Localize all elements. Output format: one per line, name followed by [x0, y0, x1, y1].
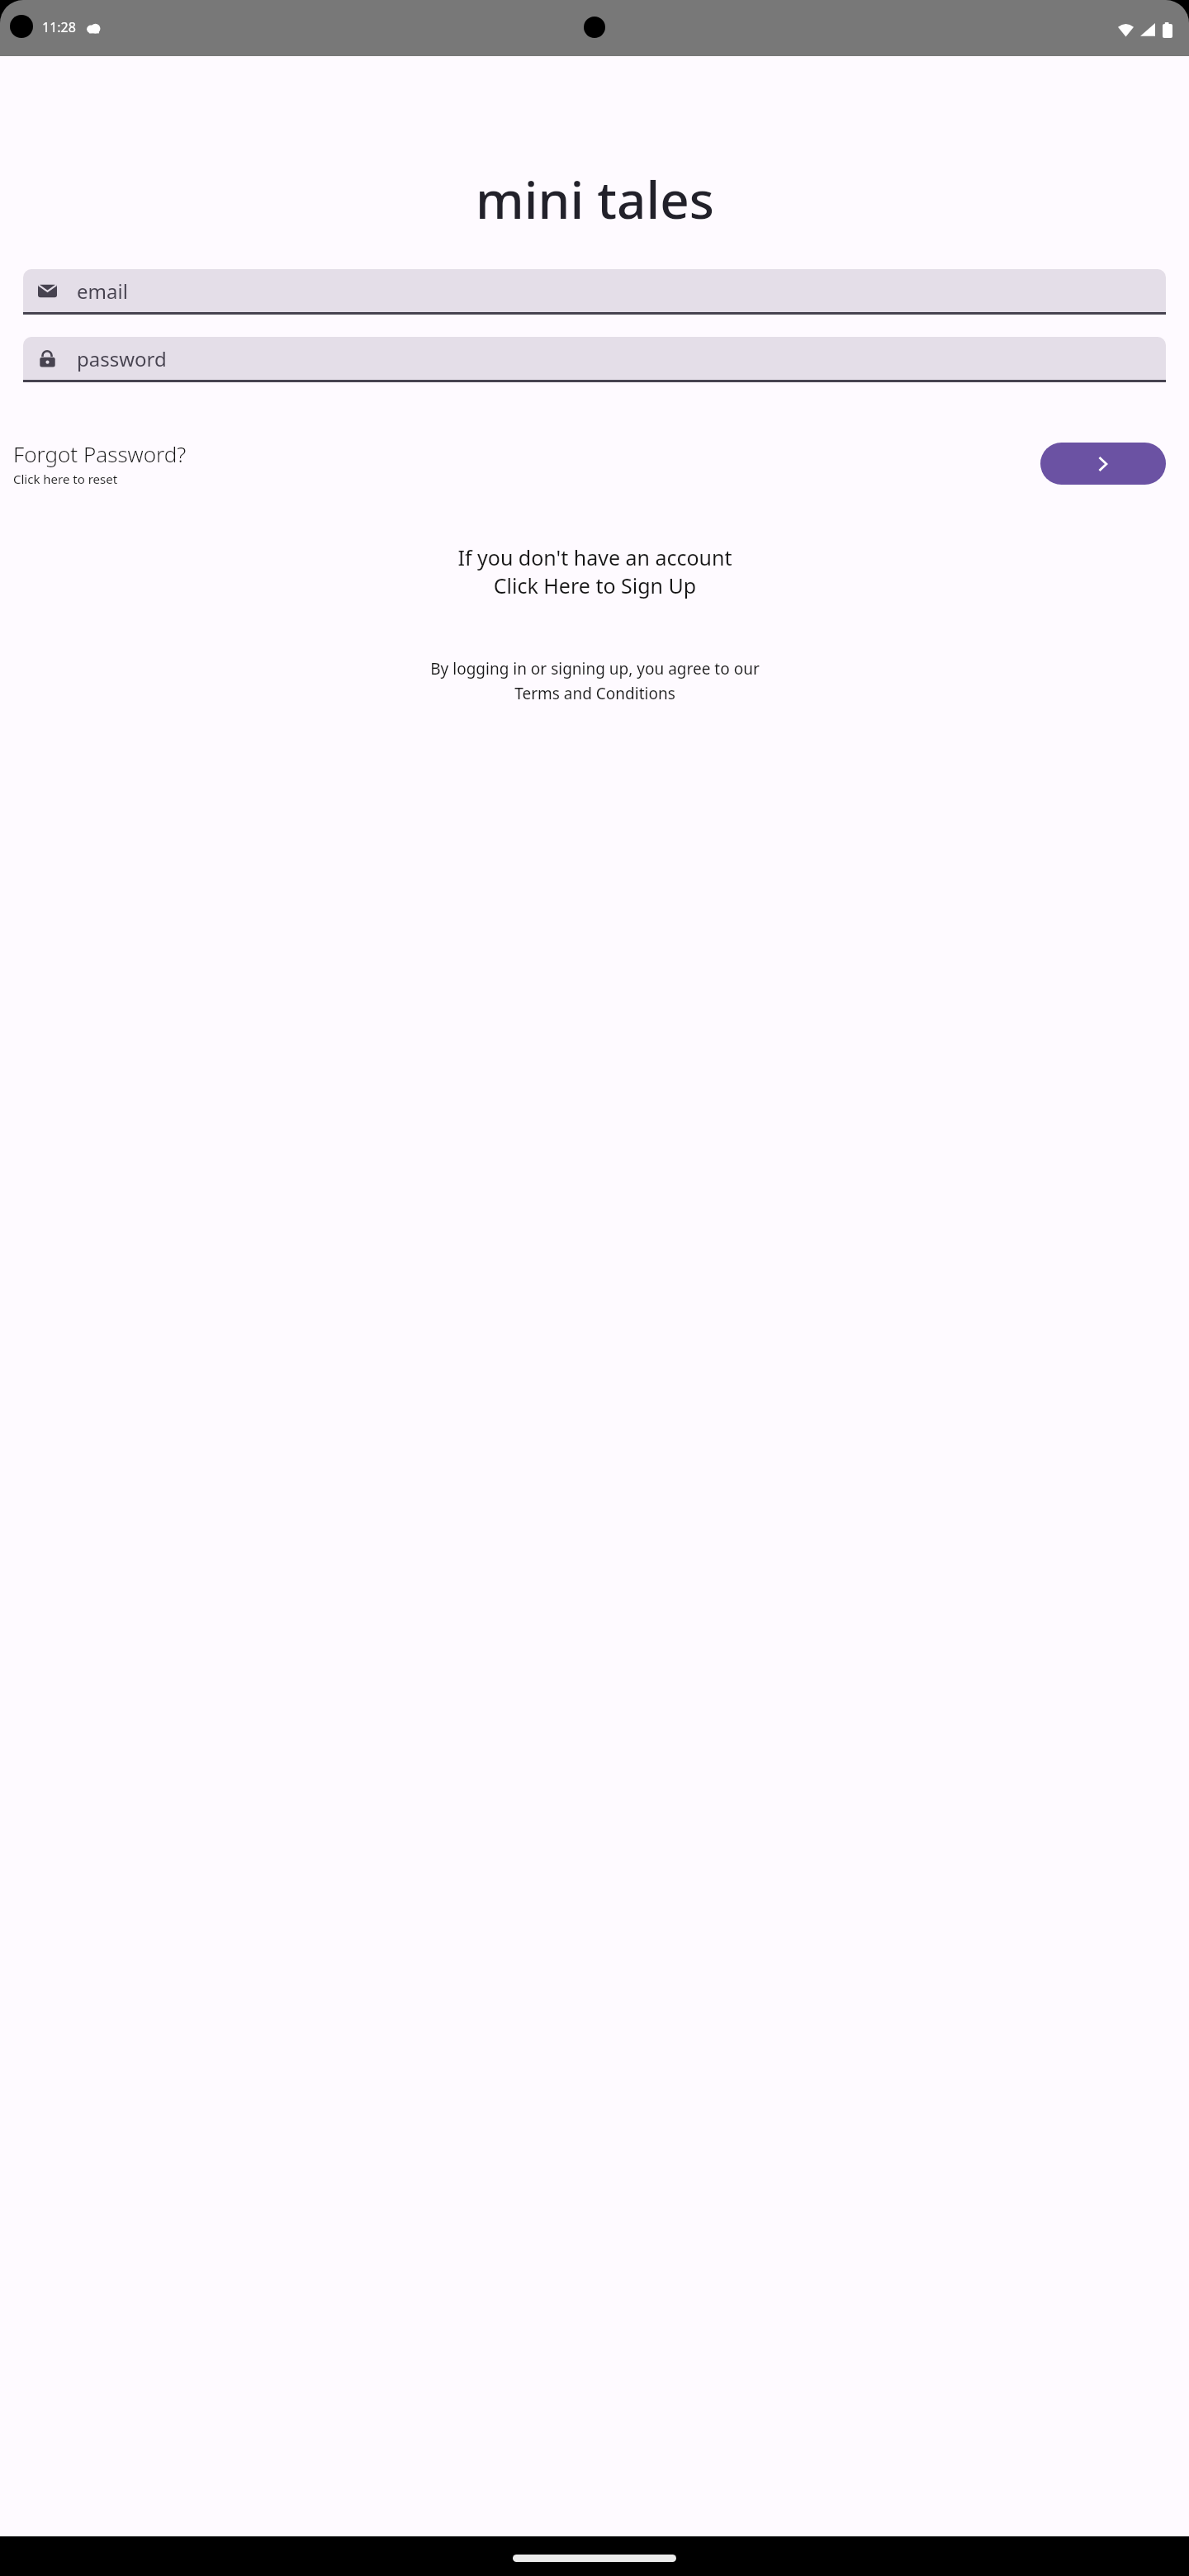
button[interactable]: Log in	[1040, 443, 1166, 485]
staticText: password	[77, 345, 167, 372]
staticText: If you don't have an account Click Here …	[457, 543, 732, 600]
staticText: By logging in or signing up, you agree t…	[430, 658, 760, 703]
button[interactable]: Forgot Password?	[13, 436, 1040, 490]
staticText: 11:28	[42, 18, 76, 36]
staticText: Forgot Password?	[13, 439, 187, 468]
button[interactable]: password	[23, 337, 1166, 382]
staticText: Click here to reset	[13, 471, 118, 487]
staticText: email	[77, 277, 128, 305]
staticText: mini tales	[476, 164, 714, 234]
button[interactable]: email	[23, 269, 1166, 315]
button[interactable]: By logging in or signing up, you agree t…	[0, 655, 1189, 707]
button[interactable]: If you don't have an account Click Here …	[0, 540, 1189, 604]
